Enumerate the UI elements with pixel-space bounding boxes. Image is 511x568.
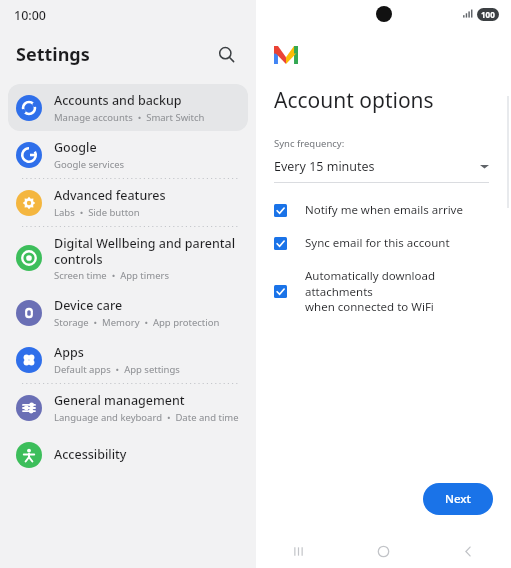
button[interactable]: Device care: [0, 289, 256, 336]
button[interactable]: Apps: [0, 336, 256, 383]
button[interactable]: General management: [0, 384, 256, 431]
button[interactable]: Notify me when emails arrive: [274, 202, 497, 218]
staticText: Language and keyboard • Date and time: [54, 411, 239, 424]
staticText: Labs • Side button: [54, 206, 140, 219]
staticText: 100: [481, 9, 495, 20]
staticText: 10:00: [14, 7, 47, 24]
staticText: Sync frequency:: [274, 137, 345, 150]
staticText: Device care: [54, 297, 123, 314]
staticText: Sync email for this account: [305, 235, 450, 251]
staticText: Storage • Memory • App protection: [54, 316, 220, 329]
button[interactable]: Advanced features: [0, 179, 256, 226]
staticText: Next: [445, 491, 471, 507]
staticText: General management: [54, 392, 185, 409]
staticText: Every 15 minutes: [274, 158, 480, 175]
staticText: Screen time • App timers: [54, 269, 169, 282]
button[interactable]: Digital Wellbeing and parental controls: [0, 227, 256, 289]
button[interactable]: Back: [426, 535, 511, 568]
button[interactable]: Home: [341, 535, 426, 568]
staticText: Settings: [16, 42, 90, 67]
staticText: Accessibility: [54, 446, 127, 463]
button[interactable]: Sync email for this account: [274, 235, 497, 251]
staticText: Apps: [54, 344, 84, 361]
staticText: Google: [54, 139, 97, 156]
staticText: Automatically download attachments when …: [305, 268, 497, 314]
button[interactable]: Recents: [256, 535, 341, 568]
staticText: Advanced features: [54, 187, 166, 204]
staticText: Account options: [274, 86, 434, 115]
staticText: Notify me when emails arrive: [305, 202, 463, 218]
button[interactable]: Google: [0, 131, 256, 178]
button[interactable]: Next: [423, 483, 493, 515]
button[interactable]: Search: [210, 38, 242, 70]
staticText: Google services: [54, 158, 125, 171]
button[interactable]: Accounts and backup: [8, 84, 248, 131]
staticText: Manage accounts • Smart Switch: [54, 111, 205, 124]
button[interactable]: Every 15 minutes: [274, 158, 489, 183]
staticText: Digital Wellbeing and parental controls: [54, 235, 236, 267]
button[interactable]: Accessibility: [0, 431, 256, 478]
staticText: Accounts and backup: [54, 92, 182, 109]
staticText: Default apps • App settings: [54, 363, 180, 376]
button[interactable]: Automatically download attachments when …: [274, 268, 497, 314]
